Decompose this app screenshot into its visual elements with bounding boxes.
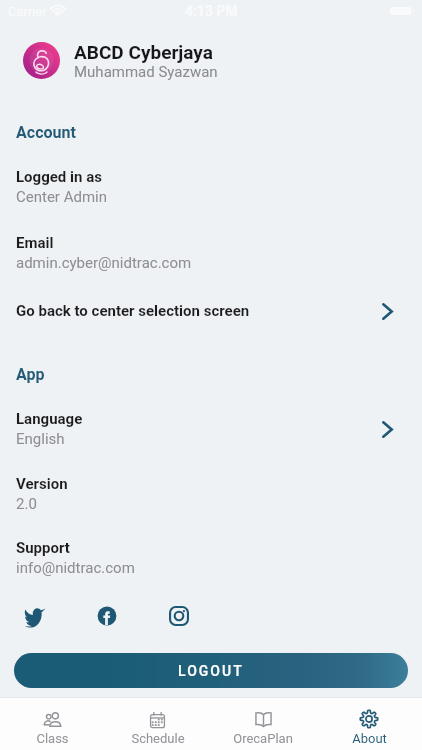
button[interactable]: LOGOUT <box>14 653 408 688</box>
staticText: Go back to center selection screen <box>16 302 250 320</box>
staticText: ABCD Cyberjaya <box>74 41 213 63</box>
button[interactable]: OrecaPlan <box>210 698 316 750</box>
staticText: admin.cyber@nidtrac.com <box>16 254 192 272</box>
staticText: Carrier <box>8 4 47 19</box>
staticText: LOGOUT <box>178 663 244 679</box>
staticText: Account <box>16 123 76 142</box>
button[interactable]: Schedule <box>105 698 210 750</box>
staticText: Email <box>16 234 54 252</box>
button[interactable]: Language <box>0 406 422 452</box>
staticText: Muhammad Syazwan <box>74 63 218 81</box>
button[interactable]: Instagram <box>158 595 199 636</box>
staticText: Class <box>36 731 69 746</box>
staticText: Logged in as <box>16 168 102 186</box>
button[interactable]: Go back to center selection screen <box>0 298 422 324</box>
staticText: App <box>16 365 45 384</box>
staticText: OrecaPlan <box>233 731 293 746</box>
button[interactable]: Facebook <box>86 595 127 636</box>
staticText: 4:13 PM <box>185 3 238 19</box>
staticText: Schedule <box>131 731 185 746</box>
staticText: Version <box>16 475 68 493</box>
staticText: 2.0 <box>16 495 37 513</box>
staticText: info@nidtrac.com <box>16 559 135 577</box>
staticText: Support <box>16 539 70 557</box>
button[interactable]: Class <box>0 698 105 750</box>
staticText: English <box>16 430 65 448</box>
staticText: Center Admin <box>16 188 107 206</box>
staticText: Language <box>16 410 83 428</box>
button[interactable]: Twitter <box>14 595 55 636</box>
button[interactable]: About <box>316 698 422 750</box>
staticText: About <box>352 731 387 746</box>
